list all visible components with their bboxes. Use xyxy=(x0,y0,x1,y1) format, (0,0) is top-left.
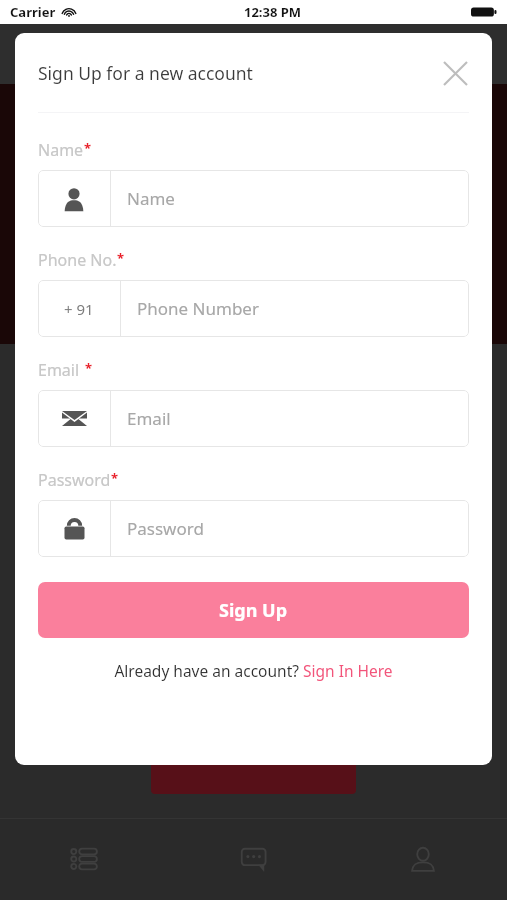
button[interactable]: Email xyxy=(38,390,469,447)
staticText: Email xyxy=(38,359,80,381)
staticText: Name xyxy=(127,187,175,210)
other: Orders xyxy=(68,842,102,876)
staticText: Carrier xyxy=(10,3,56,21)
staticText: Sign Up xyxy=(219,598,288,623)
button[interactable]: Password xyxy=(38,500,469,557)
staticText: Phone No. xyxy=(38,249,117,271)
staticText: * xyxy=(84,139,92,157)
staticText: * xyxy=(117,249,125,267)
button[interactable]: + 91 xyxy=(38,280,469,337)
other: Profile xyxy=(406,842,440,876)
staticText: Name xyxy=(38,139,84,161)
staticText: Password xyxy=(38,469,111,491)
button[interactable]: Close xyxy=(432,50,478,96)
staticText: Password xyxy=(127,517,204,540)
other: Chat xyxy=(237,842,271,876)
button[interactable]: Already have an account? Sign In Here xyxy=(38,660,469,681)
button[interactable]: Name xyxy=(38,170,469,227)
staticText: Phone Number xyxy=(137,297,259,320)
staticText: Email xyxy=(127,407,171,430)
button[interactable]: Sign Up xyxy=(38,582,469,638)
staticText: Already have an account? Sign In Here xyxy=(114,660,393,681)
staticText: + 91 xyxy=(64,299,94,319)
staticText: 12:38 PM xyxy=(244,3,302,21)
staticText: * xyxy=(85,359,93,377)
staticText: * xyxy=(111,469,119,487)
staticText: Sign Up for a new account xyxy=(38,61,253,85)
